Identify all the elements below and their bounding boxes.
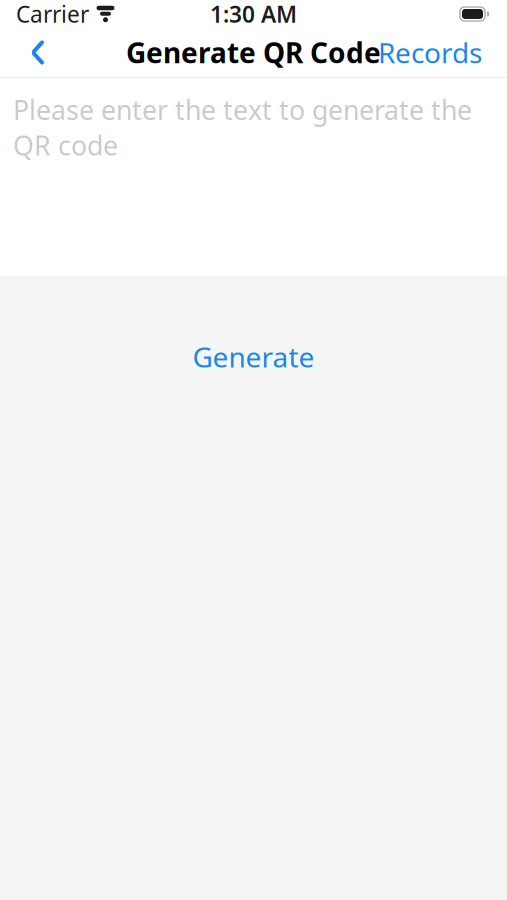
staticText: Generate: [192, 338, 314, 375]
staticText: Generate QR Code: [126, 34, 381, 71]
button[interactable]: Back: [11, 28, 65, 77]
button[interactable]: Records: [364, 28, 496, 77]
button[interactable]: Generate: [0, 326, 507, 387]
staticText: 1:30 AM: [210, 0, 297, 29]
staticText: Carrier: [16, 0, 89, 29]
staticText: Please enter the text to generate the QR…: [13, 92, 472, 163]
staticText: Records: [378, 34, 482, 71]
